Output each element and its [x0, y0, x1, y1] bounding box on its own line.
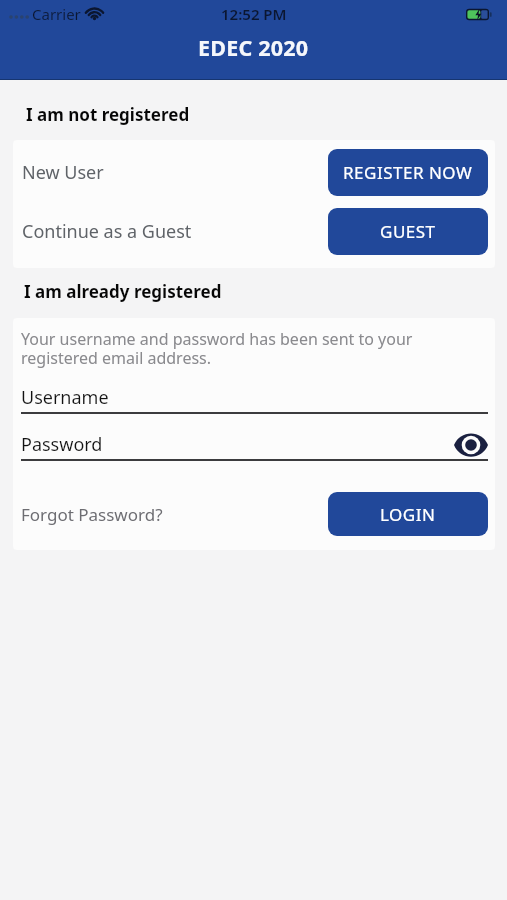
staticText: Continue as a Guest — [22, 219, 192, 244]
button[interactable]: Password — [21, 432, 488, 461]
button[interactable]: LOGIN — [328, 492, 488, 536]
button[interactable]: Username — [21, 385, 488, 414]
staticText: I am already registered — [24, 280, 222, 303]
staticText: Password — [21, 432, 103, 457]
button[interactable]: GUEST — [328, 208, 488, 255]
button[interactable]: Continue as a Guest — [22, 208, 488, 255]
button[interactable]: REGISTER NOW — [328, 149, 488, 196]
staticText: I am not registered — [26, 103, 190, 126]
staticText: LOGIN — [380, 503, 436, 526]
staticText: GUEST — [380, 220, 436, 243]
staticText: REGISTER NOW — [343, 161, 473, 184]
staticText: Your username and password has been sent… — [21, 328, 413, 369]
staticText: Username — [21, 385, 109, 410]
staticText: EDEC 2020 — [198, 33, 309, 62]
staticText: 12:52 PM — [221, 4, 287, 24]
button[interactable]: New User — [22, 149, 488, 196]
button[interactable] — [454, 433, 488, 457]
button[interactable]: Forgot Password? — [21, 503, 163, 526]
staticText: New User — [22, 160, 104, 185]
staticText: Carrier — [32, 4, 81, 24]
